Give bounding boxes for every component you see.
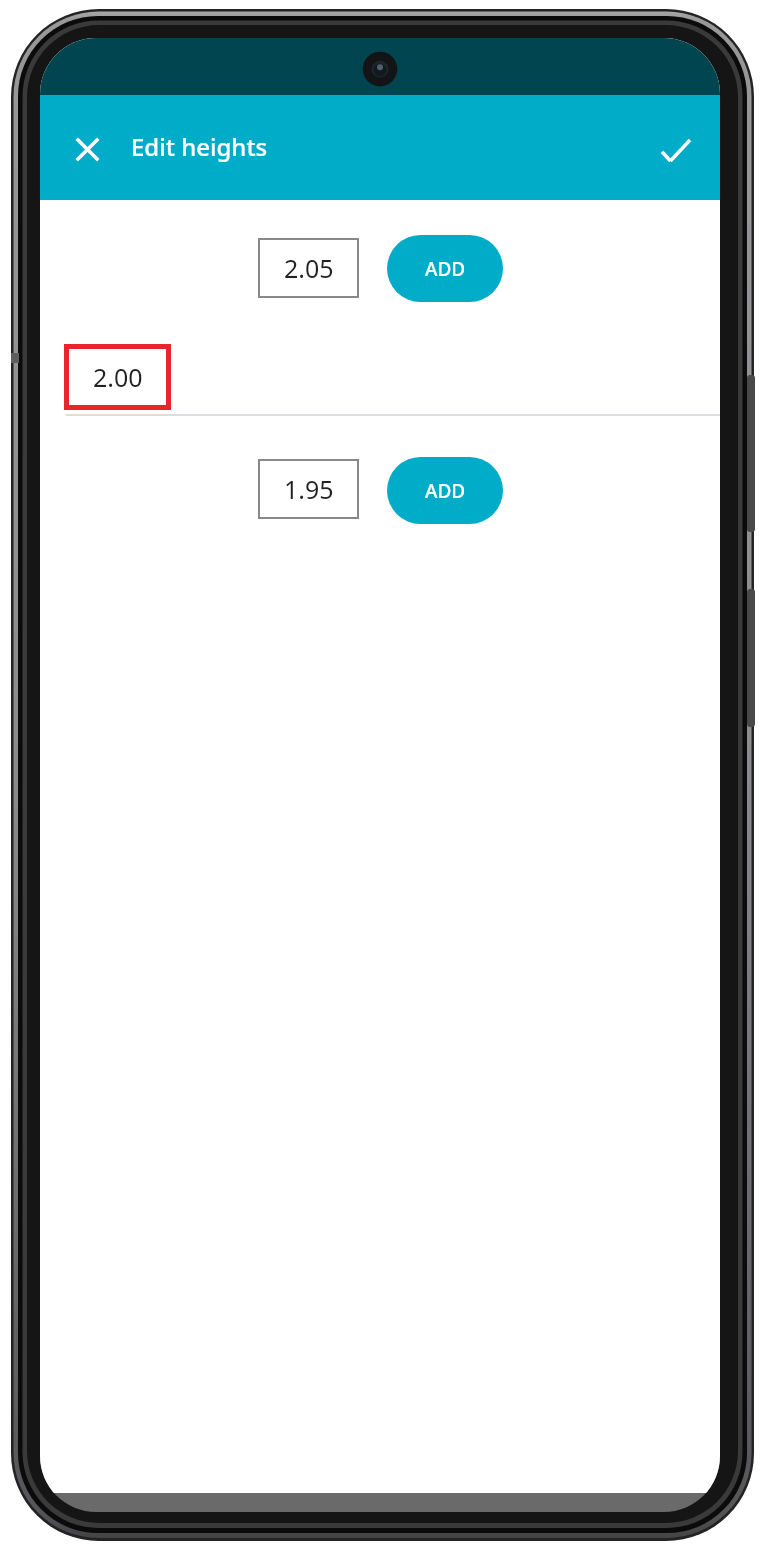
staticText: Edit heights: [131, 130, 268, 163]
button[interactable]: Close: [59, 121, 115, 177]
button[interactable]: ADD: [387, 235, 503, 302]
staticText: ADD: [425, 256, 466, 282]
button[interactable]: Done: [648, 126, 704, 182]
button[interactable]: 2.05: [258, 238, 359, 298]
staticText: ADD: [425, 478, 466, 504]
button[interactable]: ADD: [387, 457, 503, 524]
button[interactable]: 1.95: [258, 459, 359, 519]
staticText: 2.05: [284, 251, 334, 285]
staticText: 2.00: [93, 360, 143, 394]
button[interactable]: 2.00: [64, 344, 171, 410]
staticText: 1.95: [284, 472, 334, 506]
